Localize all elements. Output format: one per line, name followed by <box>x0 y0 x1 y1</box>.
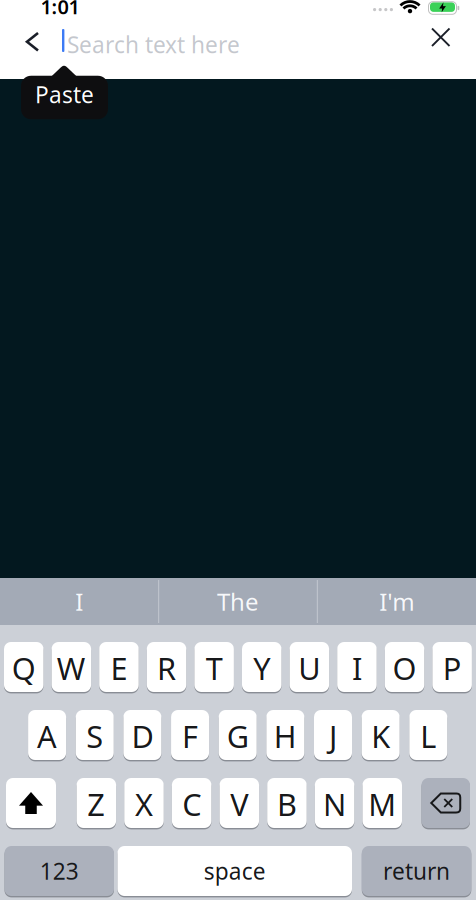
button[interactable]: O <box>385 642 424 692</box>
staticText: E <box>110 648 127 688</box>
button[interactable]: N <box>315 778 354 828</box>
button[interactable]: S <box>76 710 114 760</box>
button[interactable]: G <box>219 710 257 760</box>
staticText: V <box>230 784 248 824</box>
button[interactable]: Y <box>242 642 281 692</box>
button[interactable]: space <box>117 846 352 896</box>
staticText: X <box>135 784 153 824</box>
staticText: space <box>204 856 266 886</box>
button[interactable]: The <box>159 578 317 625</box>
staticText: 123 <box>40 856 79 886</box>
staticText: I <box>75 586 83 617</box>
button[interactable]: A <box>28 710 66 760</box>
staticText: Q <box>12 648 36 688</box>
button[interactable]: D <box>123 710 161 760</box>
button[interactable]: Paste <box>21 60 108 114</box>
staticText: S <box>86 716 103 756</box>
staticText: I <box>352 648 362 688</box>
button[interactable]: Delete <box>421 778 470 828</box>
staticText: B <box>277 784 297 824</box>
button[interactable]: K <box>362 710 400 760</box>
button[interactable]: V <box>219 778 259 828</box>
staticText: return <box>383 856 450 886</box>
staticText: D <box>131 716 153 756</box>
button[interactable]: T <box>194 642 234 692</box>
button[interactable]: Back <box>19 25 46 58</box>
button[interactable]: Z <box>77 778 116 828</box>
staticText: A <box>37 716 57 756</box>
button[interactable]: E <box>99 642 139 692</box>
button[interactable]: return <box>362 846 471 896</box>
button[interactable]: X <box>124 778 164 828</box>
staticText: P <box>443 648 462 688</box>
staticText: H <box>274 716 297 756</box>
staticText: L <box>420 716 436 756</box>
button[interactable]: Search text here <box>62 26 420 76</box>
button[interactable]: Q <box>4 642 43 692</box>
button[interactable]: J <box>314 710 352 760</box>
button[interactable]: 123 <box>4 846 114 896</box>
button[interactable]: F <box>171 710 209 760</box>
button[interactable]: R <box>147 642 186 692</box>
button[interactable]: P <box>432 642 472 692</box>
staticText: Search text here <box>67 29 240 60</box>
staticText: G <box>227 716 249 756</box>
staticText: R <box>157 648 176 688</box>
button[interactable]: Close <box>424 20 457 54</box>
button[interactable]: C <box>172 778 211 828</box>
staticText: F <box>182 716 198 756</box>
staticText: N <box>323 784 346 824</box>
staticText: Paste <box>35 79 94 109</box>
button[interactable]: B <box>267 778 307 828</box>
button[interactable]: I'm <box>317 578 476 625</box>
button[interactable]: H <box>266 710 304 760</box>
staticText: M <box>368 784 396 824</box>
staticText: Z <box>87 784 105 824</box>
staticText: Y <box>253 648 270 688</box>
staticText: I'm <box>379 586 414 617</box>
button[interactable]: Shift <box>6 778 56 828</box>
staticText: O <box>393 648 417 688</box>
button[interactable]: I <box>0 578 159 625</box>
staticText: W <box>57 648 86 688</box>
button[interactable]: M <box>362 778 402 828</box>
button[interactable]: W <box>52 642 91 692</box>
staticText: 1:01 <box>40 0 79 20</box>
staticText: The <box>217 586 259 617</box>
button[interactable]: U <box>290 642 329 692</box>
staticText: T <box>206 648 223 688</box>
staticText: U <box>298 648 320 688</box>
staticText: C <box>182 784 201 824</box>
staticText: K <box>371 716 390 756</box>
button[interactable]: I <box>337 642 377 692</box>
staticText: J <box>329 716 337 756</box>
button[interactable]: L <box>409 710 447 760</box>
